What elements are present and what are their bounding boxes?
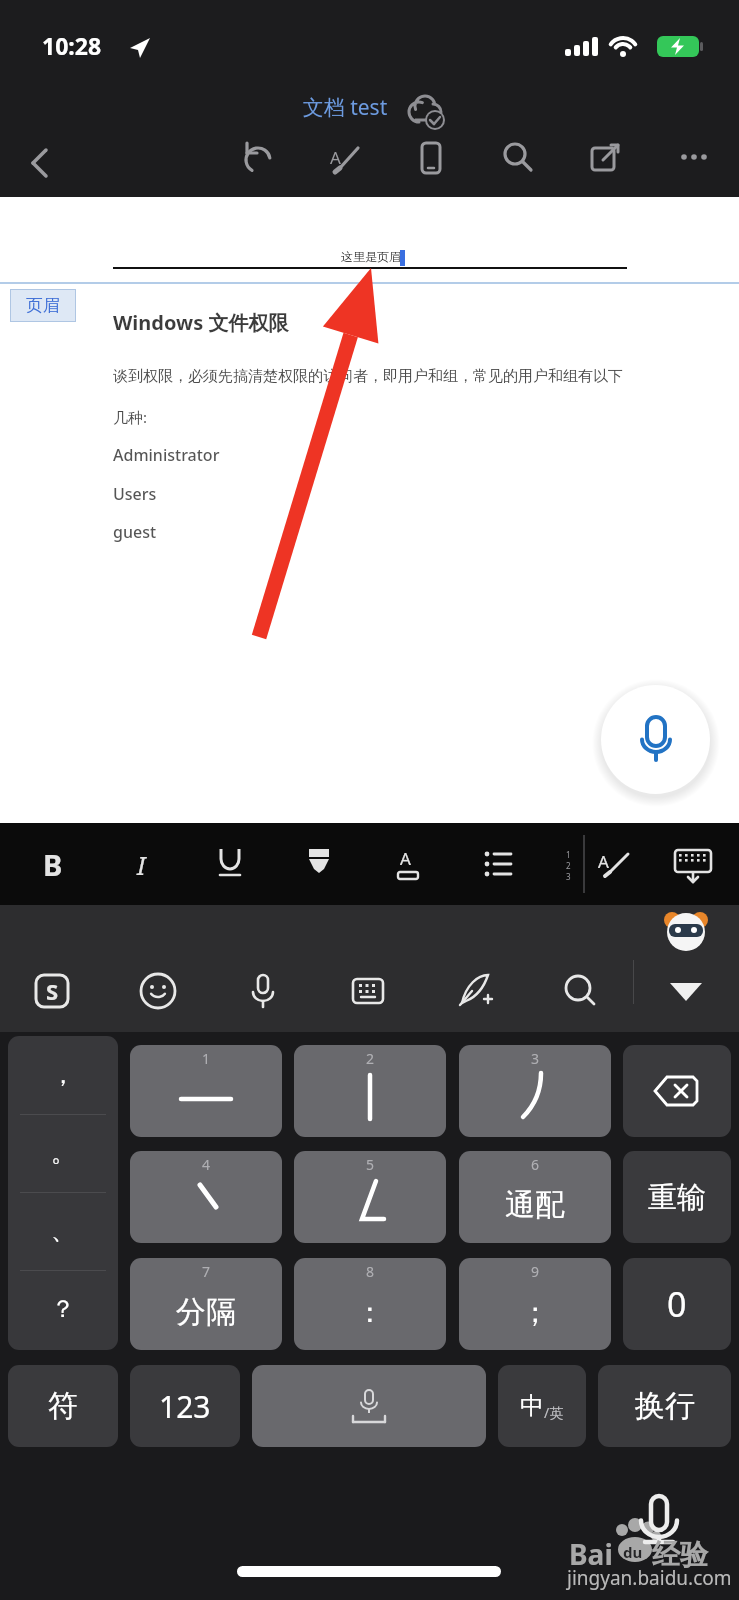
staticText: S <box>46 976 59 1006</box>
staticText: Users <box>113 483 157 505</box>
button[interactable] <box>452 969 496 1013</box>
staticText: guest <box>113 521 157 543</box>
staticText: 2 <box>366 1049 375 1068</box>
staticText: du <box>623 1542 643 1562</box>
button[interactable]: A <box>328 140 362 174</box>
button[interactable]: ， <box>8 1036 118 1114</box>
button[interactable]: B <box>34 845 72 883</box>
button[interactable]: 中 <box>498 1365 586 1447</box>
staticText: ， <box>51 1060 75 1090</box>
staticText: 通配 <box>505 1186 565 1224</box>
button[interactable]: ？ <box>8 1270 118 1348</box>
staticText: 文档 test <box>0 93 690 122</box>
staticText: A <box>330 146 341 169</box>
staticText: 123 <box>159 1386 211 1427</box>
staticText: I <box>137 847 146 882</box>
button[interactable]: I <box>122 845 160 883</box>
button[interactable] <box>479 845 517 883</box>
button[interactable] <box>677 140 711 174</box>
staticText: 中 <box>520 1391 544 1421</box>
staticText: /英 <box>544 1403 564 1422</box>
button[interactable]: 0 <box>623 1258 731 1350</box>
staticText: 。 <box>51 1138 75 1168</box>
staticText: 几种: <box>113 407 148 427</box>
button[interactable]: 7 <box>130 1258 282 1350</box>
button[interactable]: 换行 <box>598 1365 731 1447</box>
button[interactable] <box>136 969 180 1013</box>
staticText: 经验 <box>652 1537 708 1572</box>
button[interactable] <box>623 1045 731 1137</box>
staticText: 这里是页眉 <box>341 249 401 264</box>
button[interactable]: 5 <box>294 1151 446 1243</box>
button[interactable]: 页眉 <box>10 289 76 322</box>
button[interactable] <box>558 969 602 1013</box>
staticText: B <box>43 845 63 883</box>
staticText: 分隔 <box>176 1293 236 1331</box>
staticText: 换行 <box>635 1387 695 1425</box>
staticText: 、 <box>51 1216 75 1246</box>
staticText: 符 <box>48 1387 78 1425</box>
staticText: 0 <box>667 1281 687 1327</box>
button[interactable] <box>346 969 390 1013</box>
staticText: Bai <box>569 1535 613 1573</box>
staticText: 谈到权限，必须先搞清楚权限的访问者，即用户和组，常见的用户和组有以下 <box>113 367 623 386</box>
staticText: 2 <box>566 860 571 871</box>
staticText: 9 <box>531 1262 540 1281</box>
staticText: 8 <box>366 1262 375 1281</box>
button[interactable] <box>24 146 58 180</box>
button[interactable]: 123 <box>130 1365 240 1447</box>
button[interactable] <box>672 845 714 887</box>
staticText: Windows 文件权限 <box>113 309 289 336</box>
staticText: 3 <box>566 871 571 882</box>
staticText: ； <box>521 1295 549 1330</box>
button[interactable] <box>664 969 708 1013</box>
button[interactable]: 、 <box>8 1192 118 1270</box>
button[interactable]: 6 <box>459 1151 611 1243</box>
staticText: 4 <box>202 1155 211 1174</box>
staticText: 3 <box>531 1049 540 1068</box>
staticText: ？ <box>51 1294 75 1324</box>
staticText: 7 <box>202 1262 211 1281</box>
staticText: jingyan.baidu.com <box>567 1565 732 1591</box>
staticText: 1 <box>202 1049 211 1068</box>
button[interactable]: 。 <box>8 1114 118 1192</box>
button[interactable] <box>414 140 448 174</box>
button[interactable]: A <box>595 845 633 883</box>
button[interactable] <box>589 140 623 174</box>
button[interactable] <box>300 845 338 883</box>
button[interactable] <box>252 1365 486 1447</box>
button[interactable]: 8 <box>294 1258 446 1350</box>
staticText: 重输 <box>648 1179 706 1216</box>
button[interactable] <box>601 685 710 794</box>
button[interactable]: 符 <box>8 1365 118 1447</box>
staticText: 10:28 <box>42 30 102 61</box>
button[interactable]: A <box>389 845 427 883</box>
button[interactable]: 4 <box>130 1151 282 1243</box>
staticText: 页眉 <box>26 295 60 316</box>
staticText: 1 <box>566 849 571 860</box>
button[interactable]: 2 <box>294 1045 446 1137</box>
button[interactable]: 9 <box>459 1258 611 1350</box>
staticText: A <box>400 847 411 870</box>
button[interactable] <box>241 969 285 1013</box>
button[interactable]: 重输 <box>623 1151 731 1243</box>
button[interactable] <box>501 140 535 174</box>
button[interactable]: 3 <box>459 1045 611 1137</box>
button[interactable] <box>242 140 276 174</box>
staticText: A <box>598 850 609 873</box>
button[interactable] <box>211 845 249 883</box>
staticText: 5 <box>366 1155 375 1174</box>
button[interactable]: 1 <box>130 1045 282 1137</box>
button[interactable]: S <box>30 969 74 1013</box>
staticText: Administrator <box>113 444 220 466</box>
staticText: 6 <box>531 1155 540 1174</box>
staticText: ： <box>356 1295 384 1330</box>
